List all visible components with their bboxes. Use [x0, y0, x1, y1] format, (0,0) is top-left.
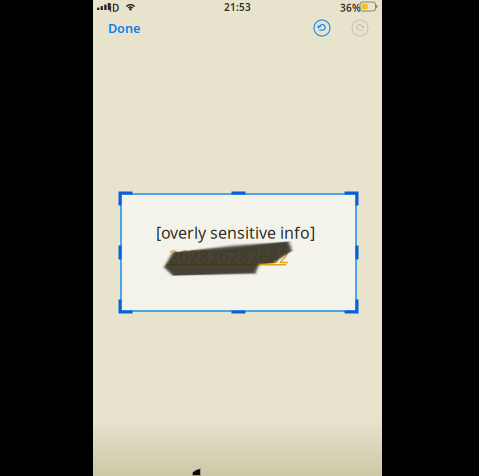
staticText: 36%: [340, 1, 361, 15]
staticText: 21:53: [224, 0, 251, 14]
staticText: 262826282682: [169, 245, 289, 268]
staticText: iD: [109, 1, 119, 15]
button[interactable]: Done: [93, 15, 133, 39]
staticText: [overly sensitive info]: [156, 222, 315, 243]
staticText: Done: [108, 19, 140, 37]
button[interactable]: Redo: [93, 15, 123, 41]
button[interactable]: Undo: [93, 15, 123, 41]
